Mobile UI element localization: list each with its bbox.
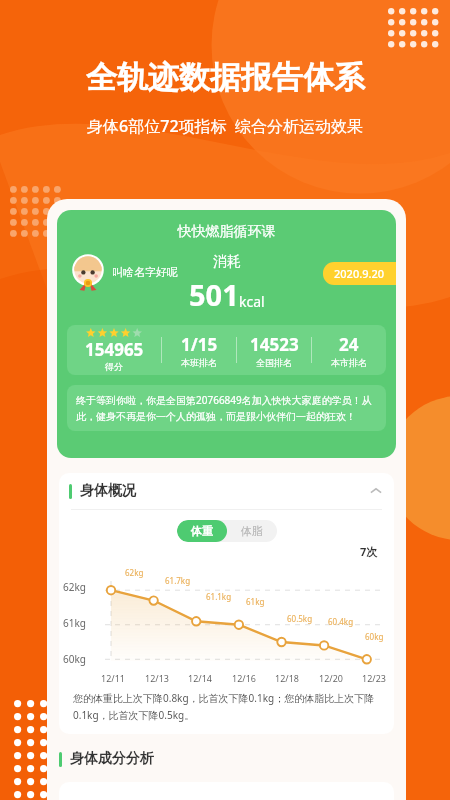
button[interactable]: 2020.9.20 [57,210,396,458]
staticText: 12/11 [101,672,125,684]
staticText: 体脂 [241,524,263,538]
staticText: 12/14 [188,672,212,684]
staticText: 62kg [63,580,86,594]
staticText: 全国排名 [256,357,292,368]
staticText: 501 [189,275,239,314]
staticText: 154965 [85,338,144,361]
staticText: 消耗 [213,253,241,271]
button[interactable]: 体脂 [227,520,277,542]
staticText: 本市排名 [331,357,367,368]
staticText: 12/23 [362,672,386,684]
staticText: 62kg [125,567,144,578]
staticText: 1/15 [181,333,218,356]
staticText: 12/13 [145,672,169,684]
staticText: 得分 [105,361,123,372]
staticText: 60kg [365,631,384,642]
staticText: 14523 [250,333,299,356]
staticText: 61.7kg [165,575,191,586]
staticText: 终于等到你啦，你是全国第20766849名加入快快大家庭的学员！从此，健身不再是… [76,393,377,423]
staticText: kcal [239,292,265,311]
staticText: 61kg [63,616,86,630]
staticText: 叫啥名字好呢 [112,265,178,279]
staticText: 7次 [360,544,378,559]
staticText: 12/16 [232,672,256,684]
staticText: 身体6部位72项指标 综合分析运动效果 [87,115,363,137]
staticText: 61kg [246,596,265,607]
other: Collapse [368,483,384,499]
staticText: 61.1kg [206,591,232,602]
staticText: 身体概况 [80,482,136,500]
staticText: 体重 [191,524,213,538]
staticText: 24 [339,333,359,356]
button[interactable]: 体重 [177,520,227,542]
staticText: 60kg [63,652,86,666]
staticText: 全轨迹数据报告体系 [86,58,365,97]
staticText: 12/20 [319,672,343,684]
staticText: 您的体重比上次下降0.8kg，比首次下降0.1kg；您的体脂比上次下降0.1kg… [73,691,380,722]
staticText: 本班排名 [181,357,217,368]
button[interactable]: 身体概况 [59,473,394,509]
staticText: 60.4kg [328,616,354,627]
staticText: 12/18 [275,672,299,684]
staticText: 60.5kg [287,613,313,624]
staticText: 2020.9.20 [334,266,385,281]
staticText: 身体成分分析 [70,750,154,768]
staticText: 快快燃脂循环课 [57,223,396,241]
